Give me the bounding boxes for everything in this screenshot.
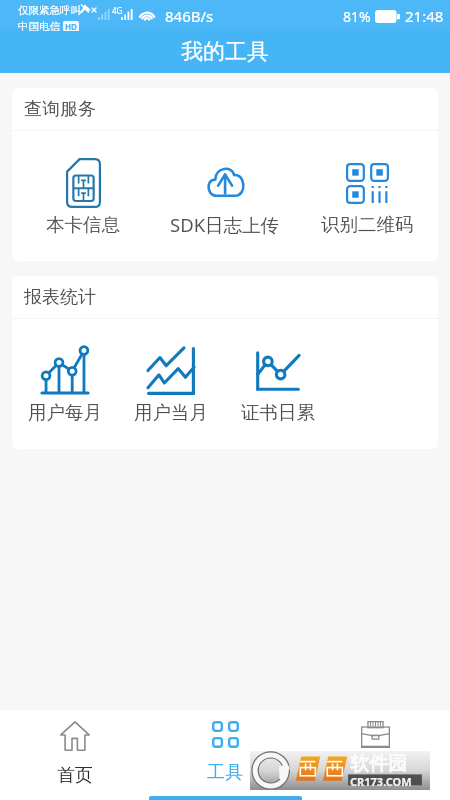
other: Tools (212, 721, 239, 748)
staticText: CR173.COM (350, 774, 412, 789)
staticText: 识别二维码 (321, 213, 414, 236)
button[interactable]: Home (0, 710, 150, 800)
staticText: 首页 (57, 764, 93, 787)
staticText: 用户每月 (28, 401, 102, 424)
staticText: 我的工具 (181, 38, 269, 66)
button[interactable]: 本卡信息 (12, 131, 154, 261)
staticText: 用户当月 (134, 401, 208, 424)
staticText: 我的 (357, 761, 393, 784)
staticText: SDK日志上传 (170, 212, 280, 237)
staticText: 本卡信息 (46, 213, 120, 236)
staticText: 报表统计 (24, 286, 96, 309)
staticText: 查询服务 (24, 98, 96, 121)
staticText: 21:48 (405, 6, 444, 26)
staticText: 工具 (207, 761, 243, 784)
button[interactable]: 识别二维码 (296, 131, 438, 261)
button[interactable]: Profile (300, 710, 450, 800)
staticText: 软件园 (350, 752, 407, 776)
staticText: 仅限紧急呼叫 (18, 4, 81, 17)
button[interactable]: 用户每月 (12, 319, 118, 449)
staticText: 4G (112, 5, 123, 16)
button[interactable]: 用户当月 (118, 319, 224, 449)
button[interactable]: SDK日志上传 (154, 131, 296, 261)
staticText: HD (65, 21, 77, 32)
staticText: 81% (343, 7, 371, 26)
button[interactable]: 证书日累 (224, 319, 331, 449)
other: Home (60, 721, 90, 751)
button[interactable]: Tools (150, 710, 300, 800)
staticText: 中国电信 (18, 20, 60, 33)
other: Profile (361, 721, 390, 748)
staticText: 证书日累 (241, 401, 315, 424)
staticText: 846B/s (165, 6, 214, 26)
